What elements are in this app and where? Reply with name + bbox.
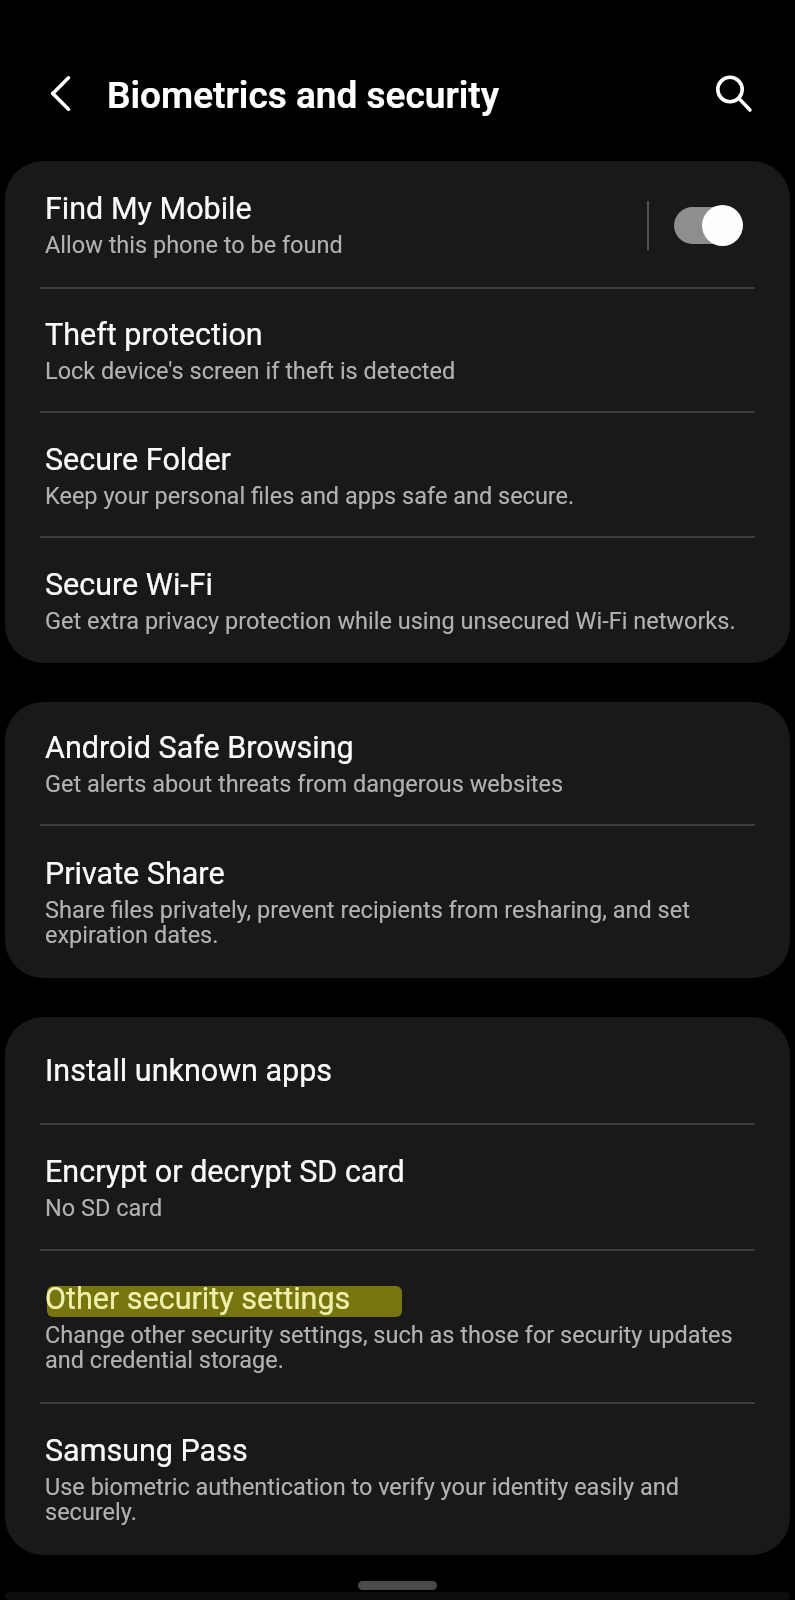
button[interactable]: Secure Wi-Fi <box>5 538 790 663</box>
button[interactable]: Secure Folder <box>5 413 790 538</box>
staticText: Biometrics and security <box>107 74 500 117</box>
staticText: Keep your personal files and apps safe a… <box>45 482 575 510</box>
button[interactable]: Theft protection <box>5 289 790 413</box>
staticText: Secure Folder <box>45 442 231 478</box>
staticText: Allow this phone to be found <box>45 231 343 259</box>
staticText: Get alerts about threats from dangerous … <box>45 770 564 798</box>
staticText: Theft protection <box>45 317 263 353</box>
button[interactable]: Find My Mobile <box>5 161 790 289</box>
staticText: Samsung Pass <box>45 1433 248 1469</box>
button[interactable]: Find My Mobile, switch on <box>664 197 752 253</box>
staticText: Use biometric authentication to verify y… <box>45 1473 752 1526</box>
staticText: No SD card <box>45 1194 163 1222</box>
staticText: Private Share <box>45 856 225 892</box>
staticText: Android Safe Browsing <box>45 730 354 766</box>
staticText: Secure Wi-Fi <box>45 567 214 603</box>
button[interactable]: Install unknown apps <box>5 1017 790 1125</box>
staticText: Install unknown apps <box>45 1053 333 1089</box>
staticText: Change other security settings, such as … <box>45 1321 752 1374</box>
staticText: Encrypt or decrypt SD card <box>45 1154 405 1190</box>
button[interactable]: Android Safe Browsing <box>5 702 790 826</box>
button[interactable]: Private Share <box>5 826 790 978</box>
staticText: Find My Mobile <box>45 191 252 227</box>
button[interactable]: Encrypt or decrypt SD card <box>5 1125 790 1251</box>
staticText: Get extra privacy protection while using… <box>45 607 736 635</box>
staticText: Lock device's screen if theft is detecte… <box>45 357 456 385</box>
button[interactable]: Navigate up <box>26 60 94 128</box>
button[interactable]: Other security settings <box>5 1251 790 1404</box>
button[interactable]: Search settings <box>696 56 764 124</box>
button[interactable]: Samsung Pass <box>5 1404 790 1555</box>
staticText: Other security settings <box>45 1281 351 1317</box>
staticText: Share files privately, prevent recipient… <box>45 896 752 949</box>
